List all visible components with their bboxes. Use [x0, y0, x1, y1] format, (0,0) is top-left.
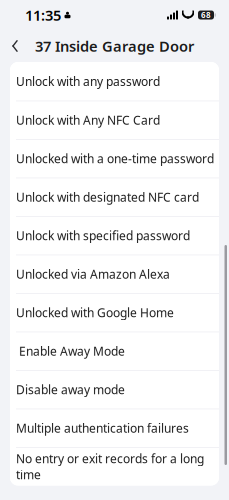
staticText: No entry or exit records for a long time: [16, 451, 204, 483]
button[interactable]: Unlocked with a one-time password: [10, 139, 219, 177]
staticText: Unlock with any password: [16, 73, 160, 89]
button[interactable]: Unlock with any password: [10, 62, 219, 100]
staticText: 11:35: [25, 5, 61, 25]
button[interactable]: Unlocked via Amazon Alexa: [10, 254, 219, 293]
staticText: 37 Inside Garage Door: [35, 36, 194, 56]
button[interactable]: Back: [0, 31, 30, 61]
staticText: Unlock with specified password: [16, 228, 190, 244]
staticText: 68: [201, 10, 211, 20]
staticText: Unlocked with a one-time password: [16, 151, 214, 167]
staticText: Disable away mode: [16, 382, 125, 398]
staticText: Unlocked via Amazon Alexa: [16, 266, 170, 282]
button[interactable]: Enable Away Mode: [10, 331, 219, 370]
button[interactable]: Unlock with designated NFC card: [10, 177, 219, 216]
staticText: Multiple authentication failures: [16, 420, 189, 436]
staticText: Unlock with Any NFC Card: [16, 112, 160, 128]
staticText: Unlocked with Google Home: [16, 305, 174, 321]
button[interactable]: Unlocked with Google Home: [10, 293, 219, 331]
staticText: Enable Away Mode: [16, 343, 125, 359]
staticText: Unlock with designated NFC card: [16, 189, 199, 205]
button[interactable]: Unlock with specified password: [10, 216, 219, 254]
button[interactable]: Unlock with Any NFC Card: [10, 100, 219, 139]
button[interactable]: Disable away mode: [10, 370, 219, 408]
button[interactable]: No entry or exit records for a long time: [10, 447, 219, 485]
button[interactable]: Multiple authentication failures: [10, 408, 219, 447]
